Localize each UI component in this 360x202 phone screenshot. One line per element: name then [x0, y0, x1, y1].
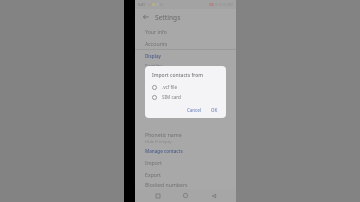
staticText: Manage contacts — [145, 148, 183, 154]
staticText: OK — [211, 107, 218, 113]
button[interactable]: Your info — [135, 25, 236, 37]
staticText: Settings — [155, 13, 181, 22]
button[interactable]: Cancel — [184, 105, 204, 115]
staticText: Display — [145, 53, 161, 59]
staticText: First name — [145, 70, 166, 76]
staticText: Export — [145, 171, 161, 178]
button[interactable]: .vcf file — [152, 84, 221, 90]
button[interactable]: Phonetic name — [135, 130, 236, 145]
button[interactable]: Back — [208, 190, 219, 201]
staticText: Import — [145, 159, 162, 166]
staticText: Your info — [145, 28, 167, 35]
staticText: 9:41 — [138, 2, 146, 7]
staticText: Sort by — [145, 62, 163, 69]
button[interactable]: Accounts — [135, 37, 236, 49]
staticText: .vcf file — [162, 84, 178, 90]
button[interactable]: Home — [180, 190, 191, 201]
button[interactable]: Recents — [152, 190, 163, 201]
staticText: Accounts — [145, 40, 168, 47]
button[interactable]: Back — [141, 12, 151, 22]
staticText: Import contacts from — [152, 72, 204, 79]
button[interactable]: Sort by — [135, 61, 236, 76]
button[interactable]: Export — [135, 168, 236, 180]
staticText: Cancel — [187, 107, 201, 113]
staticText: Blocked numbers — [145, 181, 188, 188]
button[interactable]: SIM card — [152, 94, 221, 100]
staticText: Phonetic name — [145, 131, 182, 138]
button[interactable]: Blocked numbers — [135, 180, 236, 189]
button[interactable]: Import — [135, 156, 236, 168]
staticText: Hide if empty — [145, 139, 172, 145]
staticText: SIM card — [162, 94, 181, 100]
button[interactable]: OK — [208, 105, 221, 115]
